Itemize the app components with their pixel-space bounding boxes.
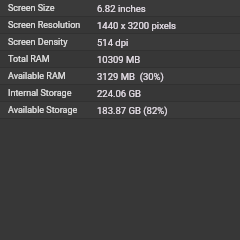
- staticText: Available Storage: [8, 105, 78, 116]
- staticText: Internal Storage: [8, 88, 72, 99]
- button[interactable]: Screen Density: [0, 34, 240, 51]
- staticText: 1440 x 3200 pixels: [97, 20, 177, 31]
- staticText: Screen Size: [8, 3, 55, 14]
- staticText: 183.87 GB (82%): [97, 105, 168, 116]
- button[interactable]: Screen Resolution: [0, 17, 240, 34]
- staticText: Screen Resolution: [8, 20, 81, 31]
- button[interactable]: Available Storage: [0, 102, 240, 119]
- button[interactable]: Internal Storage: [0, 85, 240, 102]
- staticText: 224.06 GB: [97, 88, 141, 99]
- staticText: Screen Density: [8, 37, 68, 48]
- staticText: 6.82 inches: [97, 3, 146, 14]
- staticText: 3129 MB (30%): [97, 71, 164, 82]
- staticText: 10309 MB: [97, 54, 141, 65]
- staticText: 514 dpi: [97, 37, 129, 48]
- button[interactable]: Available RAM: [0, 68, 240, 85]
- button[interactable]: Screen Size: [0, 0, 240, 17]
- staticText: Available RAM: [8, 71, 66, 82]
- staticText: Total RAM: [8, 54, 50, 65]
- button[interactable]: Total RAM: [0, 51, 240, 68]
